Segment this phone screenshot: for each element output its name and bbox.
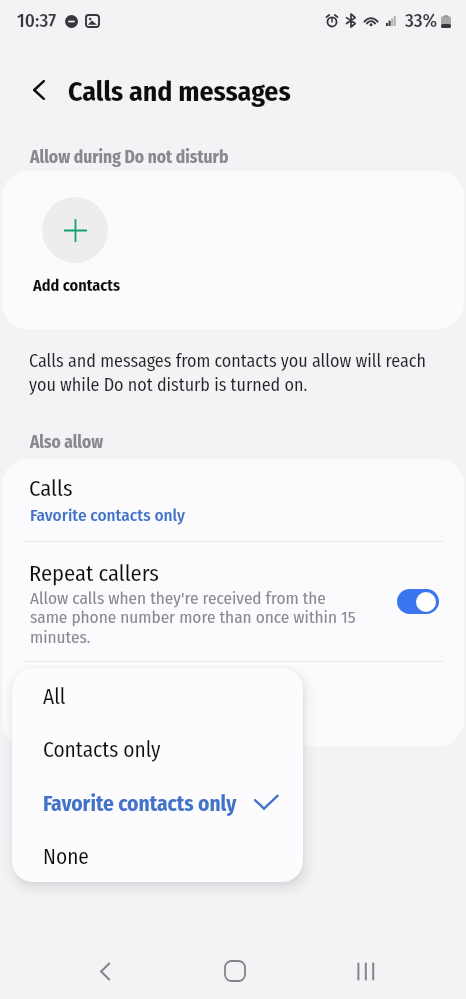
button[interactable]: Navigate up [18,68,62,112]
staticText: Favorite contacts only [43,791,237,817]
button[interactable]: Add contacts [42,197,108,263]
button[interactable]: Back [83,949,127,993]
button[interactable]: Contacts only [12,721,303,775]
button[interactable]: All [12,668,303,722]
staticText: 33% [405,9,438,32]
staticText: 10:37 [17,9,57,32]
staticText: Add contacts [33,276,121,295]
button[interactable]: Home [213,949,257,993]
staticText: Repeat callers [29,560,159,587]
staticText: All [43,684,66,710]
button[interactable]: Calls [2,470,464,541]
staticText: Contacts only [43,737,161,763]
staticText: Allow during Do not disturb [30,147,229,168]
button[interactable]: Favorite contacts only [12,775,303,829]
staticText: Also allow [30,432,103,453]
staticText: Calls and messages [68,75,291,108]
staticText: Calls [29,475,73,502]
staticText: Calls and messages from contacts you all… [29,350,447,396]
button[interactable]: Repeat callers [397,589,439,614]
staticText: Favorite contacts only [30,505,186,526]
button[interactable]: Repeat callers [2,542,464,661]
staticText: Allow calls when they're received from t… [30,588,360,648]
staticText: None [43,844,89,870]
button[interactable]: None [12,828,303,882]
button[interactable]: Recent apps [344,949,388,993]
